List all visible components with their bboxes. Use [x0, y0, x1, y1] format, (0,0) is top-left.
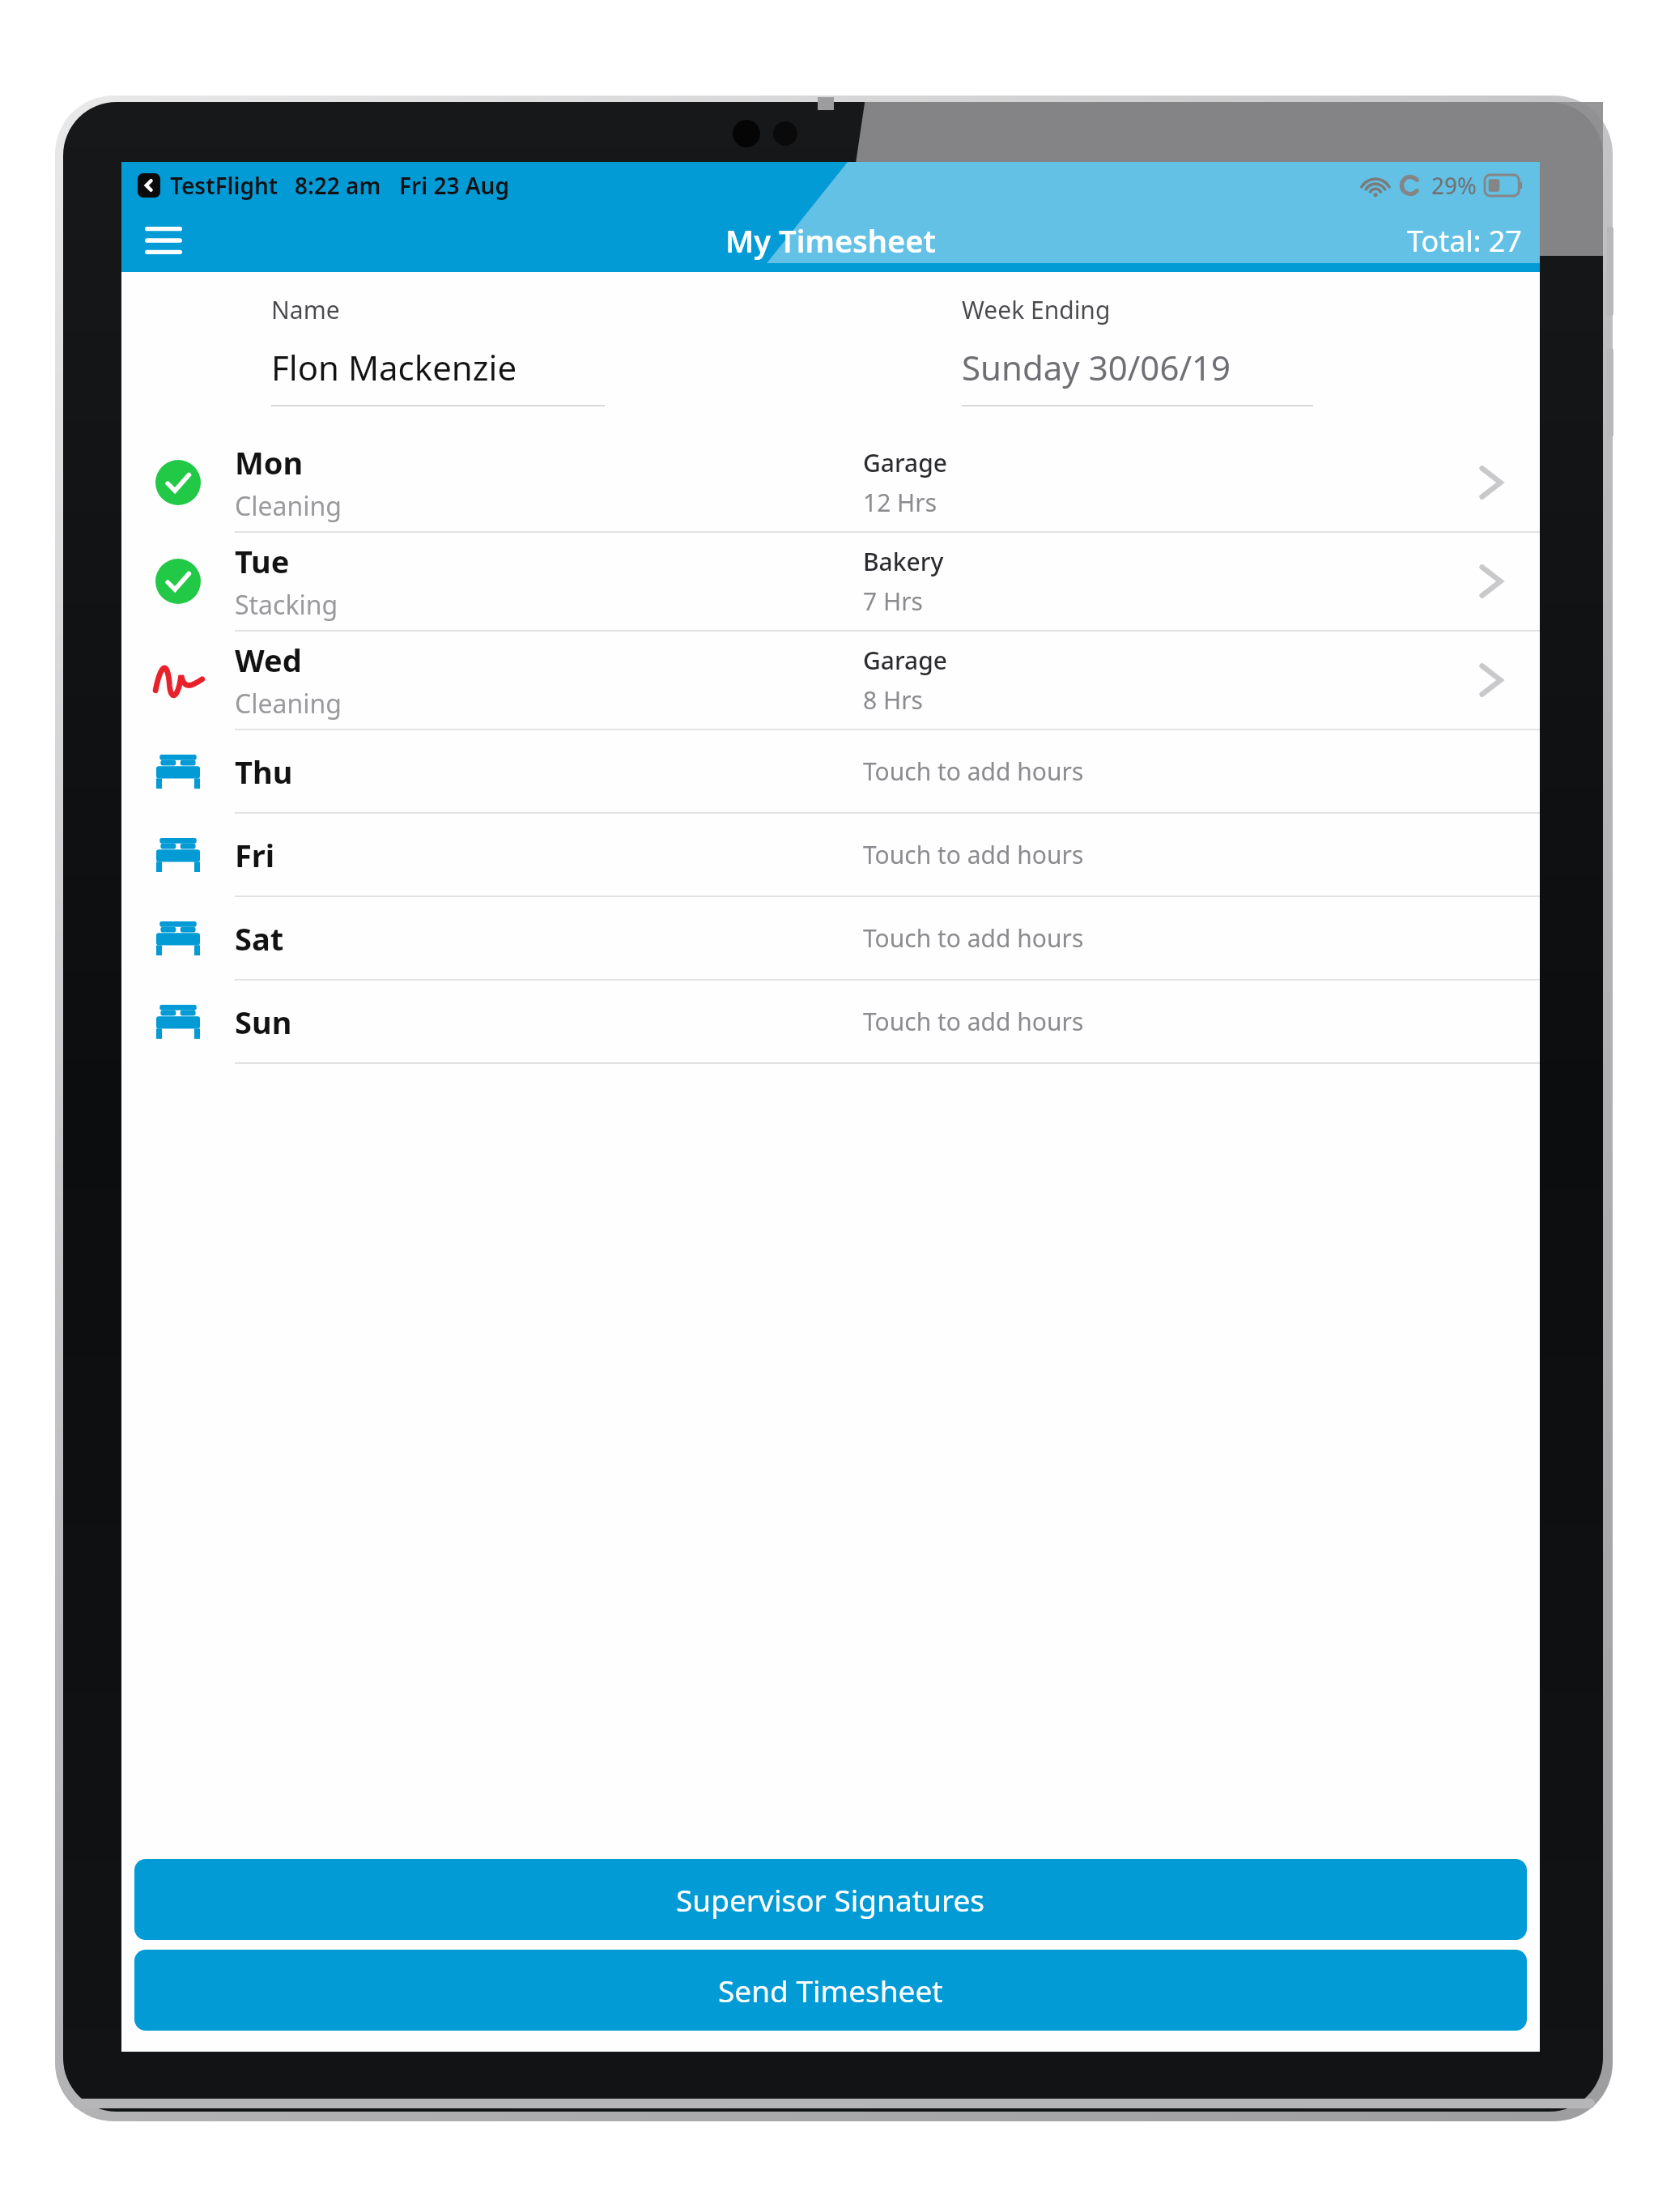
staticText: Touch to add hours [863, 1005, 1084, 1038]
button[interactable]: Send Timesheet [134, 1950, 1527, 2031]
staticText: Touch to add hours [863, 921, 1084, 955]
button[interactable]: Sun, touch to add hours [121, 981, 1540, 1064]
staticText: Cleaning [235, 686, 342, 721]
staticText: Tue [235, 540, 290, 582]
staticText: Bakery [863, 545, 944, 578]
button[interactable]: Week Ending [962, 293, 1390, 406]
staticText: Mon [235, 441, 304, 483]
staticText: Name [271, 293, 340, 326]
staticText: Thu [235, 751, 293, 793]
button[interactable]: Name [271, 293, 678, 406]
button[interactable]: Supervisor Signatures [134, 1859, 1527, 1940]
staticText: Touch to add hours [863, 755, 1084, 788]
button[interactable]: Fri, touch to add hours [121, 814, 1540, 897]
button[interactable]: Back to TestFlight [138, 173, 160, 198]
staticText: 12 Hrs [863, 486, 937, 519]
button[interactable]: Open navigation menu [133, 210, 194, 271]
button[interactable]: Sat, touch to add hours [121, 897, 1540, 981]
staticText: Garage [863, 644, 948, 677]
staticText: TestFlight [170, 170, 278, 201]
staticText: Fri 23 Aug [399, 170, 509, 201]
button[interactable]: Wed [121, 632, 1540, 730]
staticText: Sat [235, 917, 284, 959]
button[interactable]: Mon [121, 434, 1540, 533]
staticText: Sunday 30/06/19 [962, 344, 1231, 390]
staticText: Fri [235, 834, 275, 876]
button[interactable]: Tue [121, 533, 1540, 632]
staticText: 8:22 am [295, 170, 381, 201]
staticText: Wed [235, 639, 302, 681]
staticText: 7 Hrs [863, 585, 923, 618]
staticText: Cleaning [235, 488, 342, 524]
staticText: My Timesheet [725, 219, 936, 262]
staticText: Garage [863, 446, 948, 479]
staticText: Send Timesheet [718, 1970, 943, 2010]
staticText: Touch to add hours [863, 838, 1084, 871]
staticText: Flon Mackenzie [271, 344, 517, 390]
staticText: Total: 27 [1407, 221, 1522, 261]
staticText: Stacking [235, 587, 338, 623]
staticText: 29% [1431, 170, 1477, 201]
staticText: 8 Hrs [863, 683, 923, 717]
staticText: Supervisor Signatures [676, 1879, 985, 1920]
button[interactable]: Thu, touch to add hours [121, 730, 1540, 814]
staticText: Week Ending [962, 293, 1111, 326]
staticText: Sun [235, 1001, 292, 1043]
